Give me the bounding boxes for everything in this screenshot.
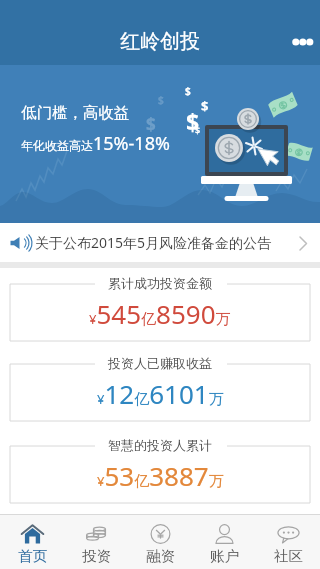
button[interactable]: 累计成功投资金额 xyxy=(0,278,320,342)
staticText: $ xyxy=(146,113,156,136)
staticText: 首页 xyxy=(18,547,47,565)
button[interactable]: 投资人已赚取收益 xyxy=(0,358,320,422)
button[interactable]: Home xyxy=(0,515,64,569)
staticText: 累计成功投资金额 xyxy=(108,275,212,291)
staticText: 智慧的投资人累计 xyxy=(108,437,212,453)
staticText: $ xyxy=(186,106,200,137)
staticText: ¥545亿8590万 xyxy=(89,296,231,331)
staticText: ¥12亿6101万 xyxy=(97,376,224,411)
staticText: $ xyxy=(195,124,201,136)
button[interactable]: Open announcement xyxy=(288,228,318,258)
staticText: 关于公布2015年5月风险准备金的公告 xyxy=(35,233,272,252)
staticText: $ xyxy=(158,93,164,107)
button[interactable]: 智慧的投资人累计 xyxy=(0,440,320,504)
staticText: 红岭创投 xyxy=(120,29,200,54)
button[interactable]: Community xyxy=(256,515,320,569)
staticText: 社区 xyxy=(274,547,303,565)
staticText: ¥53亿3887万 xyxy=(97,458,224,493)
staticText: $ xyxy=(185,84,191,98)
button[interactable]: Invest xyxy=(64,515,128,569)
staticText: 低门槛，高收益 xyxy=(21,103,130,123)
button[interactable]: Financing xyxy=(128,515,192,569)
button[interactable]: Account xyxy=(192,515,256,569)
staticText: $ xyxy=(201,97,209,115)
staticText: 融资 xyxy=(146,547,175,565)
staticText: 账户 xyxy=(210,547,239,565)
staticText: 投资 xyxy=(82,547,111,565)
button[interactable]: 关于公布2015年5月风险准备金的公告 xyxy=(0,223,320,262)
button[interactable]: More options xyxy=(278,20,320,64)
staticText: 年化收益高达15%-18% xyxy=(21,131,170,156)
staticText: 投资人已赚取收益 xyxy=(108,355,212,371)
